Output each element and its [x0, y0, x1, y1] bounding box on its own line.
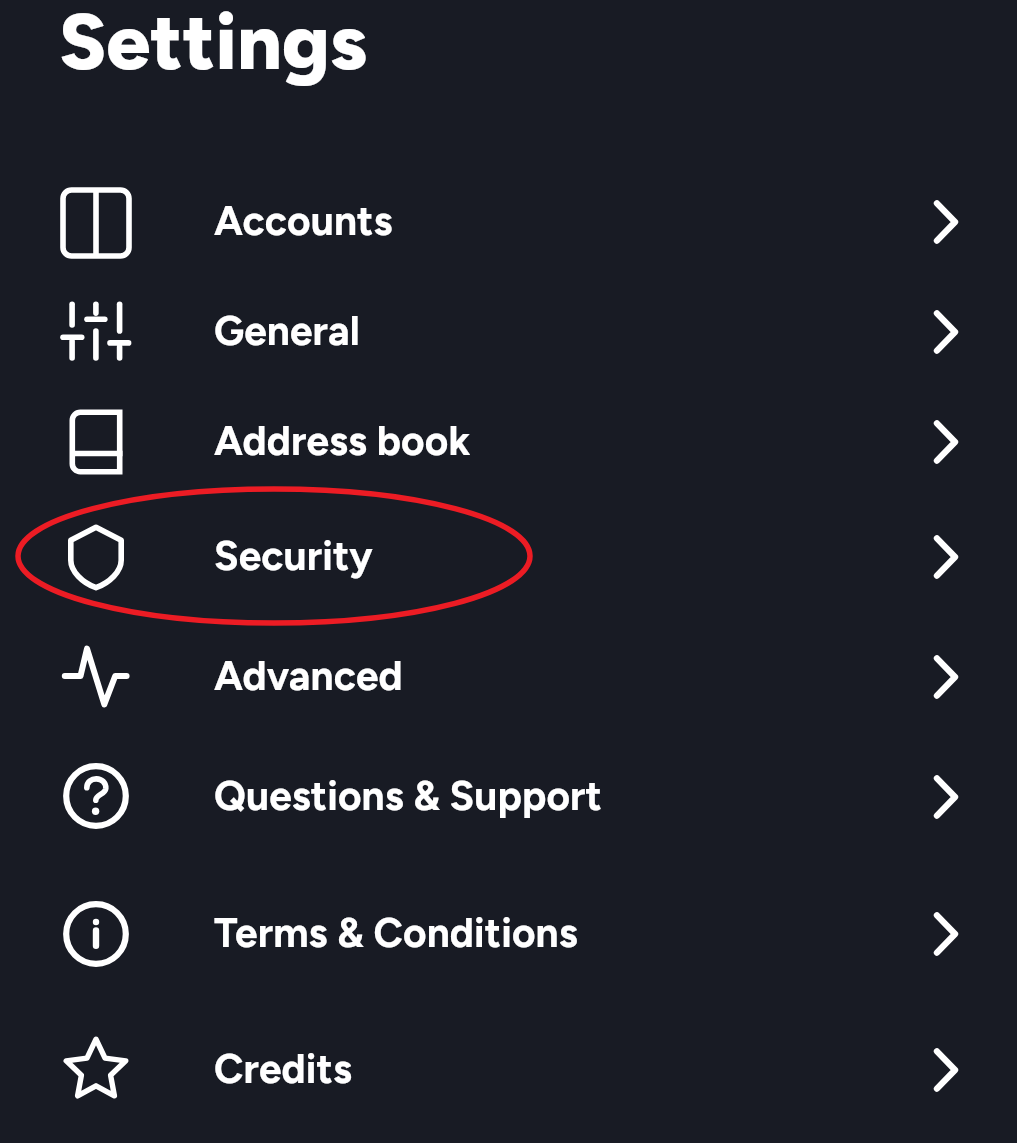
button[interactable]: General [0, 276, 1017, 386]
other: Open Advanced [916, 646, 976, 706]
button[interactable]: Security [0, 497, 1017, 615]
other: Credits [60, 1034, 132, 1106]
button[interactable]: Credits [0, 1001, 1017, 1137]
other: Terms & Conditions [60, 898, 132, 970]
other: Address book [60, 406, 132, 478]
other: Open Address book [916, 411, 976, 471]
other: Open General [916, 301, 976, 361]
staticText: Terms & Conditions [214, 909, 578, 958]
staticText: Security [214, 532, 373, 581]
staticText: Questions & Support [214, 772, 602, 821]
staticText: Advanced [214, 652, 403, 701]
button[interactable]: Advanced [0, 616, 1017, 736]
other: Security [60, 521, 132, 593]
other: General [60, 295, 132, 367]
button[interactable]: Terms & Conditions [0, 865, 1017, 1001]
button[interactable]: Address book [0, 385, 1017, 497]
other: Advanced [60, 640, 132, 712]
staticText: Credits [214, 1045, 352, 1094]
other: Accounts [60, 187, 132, 259]
staticText: General [214, 307, 360, 356]
other: Open Credits [916, 1039, 976, 1099]
other: Open Terms & Conditions [916, 903, 976, 963]
other: Questions & Support [60, 760, 132, 832]
other: Open Accounts [916, 191, 976, 251]
button[interactable]: Accounts [0, 166, 1017, 276]
staticText: Settings [59, 0, 368, 88]
staticText: Accounts [214, 197, 393, 246]
button[interactable]: Questions & Support [0, 732, 1017, 860]
other: Open Security [916, 526, 976, 586]
staticText: Address book [214, 417, 471, 466]
other: Open Questions & Support [916, 766, 976, 826]
